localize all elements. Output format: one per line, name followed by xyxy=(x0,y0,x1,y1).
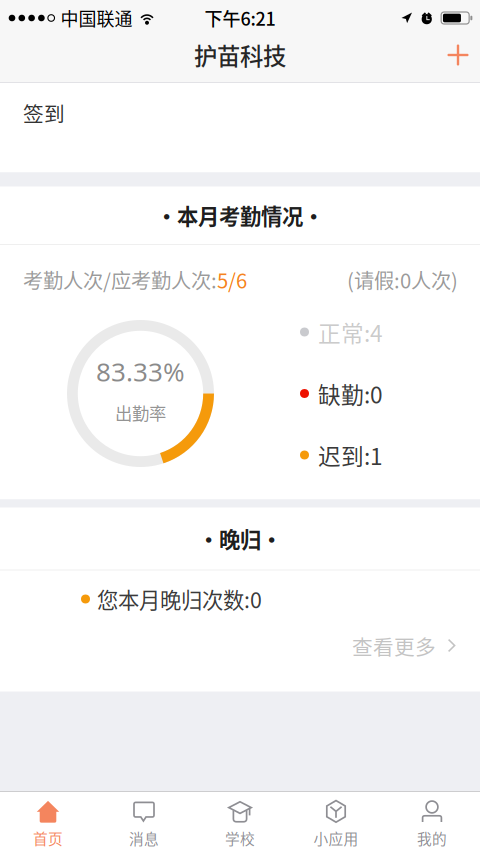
staticText: 中国联通 xyxy=(60,5,132,31)
staticText: 首页 xyxy=(33,827,63,849)
staticText: 小应用 xyxy=(313,827,358,849)
staticText: 考勤人次/应考勤人次: xyxy=(23,265,217,294)
button[interactable]: 学校 xyxy=(192,799,288,848)
staticText: ·本月考勤情况· xyxy=(156,200,324,231)
staticText: 下午6:21 xyxy=(204,5,275,31)
button[interactable]: 查看更多 xyxy=(0,627,480,664)
staticText: 查看更多 xyxy=(352,631,436,661)
button[interactable]: 我的 xyxy=(384,799,480,848)
staticText: (请假:0人次) xyxy=(347,265,458,294)
staticText: 我的 xyxy=(417,827,447,849)
staticText: 您本月晚归次数:0 xyxy=(97,584,262,614)
staticText: 迟到:1 xyxy=(318,439,383,471)
staticText: 正常:4 xyxy=(318,316,383,348)
staticText: 签到 xyxy=(23,98,65,128)
staticText: 缺勤:0 xyxy=(318,377,383,410)
staticText: 消息 xyxy=(129,827,159,849)
button[interactable]: 小应用 xyxy=(288,799,384,848)
button[interactable]: Add xyxy=(436,33,480,77)
staticText: 83.33% xyxy=(96,354,185,389)
button[interactable]: 消息 xyxy=(96,799,192,848)
button[interactable]: 签到 xyxy=(0,83,480,172)
staticText: 护苗科技 xyxy=(194,38,286,72)
staticText: ·晚归· xyxy=(198,523,282,554)
staticText: 学校 xyxy=(225,827,255,849)
staticText: 出勤率 xyxy=(115,400,166,425)
button[interactable]: 首页 xyxy=(0,799,96,848)
staticText: 5/6 xyxy=(217,265,247,294)
